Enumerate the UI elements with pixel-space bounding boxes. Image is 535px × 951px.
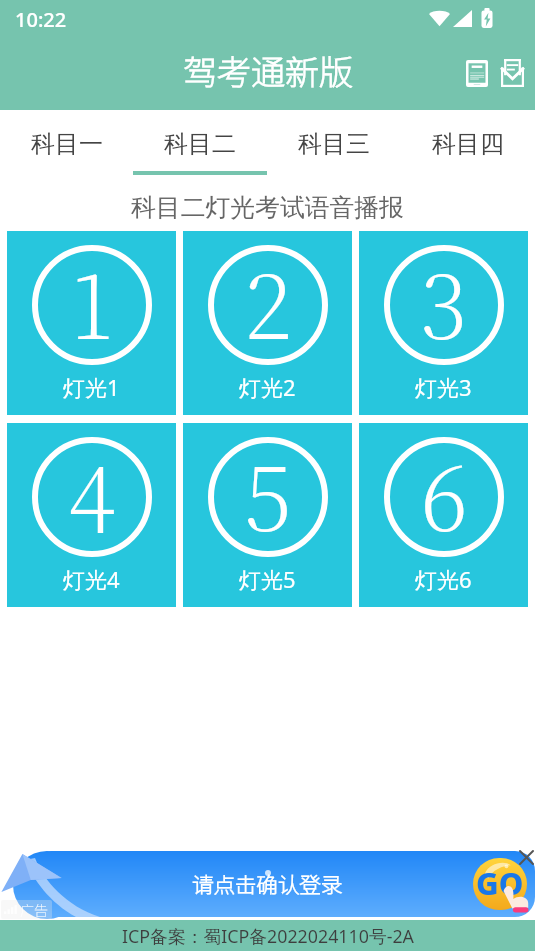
staticText: 灯光5 — [239, 564, 296, 594]
staticText: 科目一 — [31, 129, 103, 159]
button[interactable]: 科目二 — [133, 110, 267, 178]
button[interactable]: 4 — [7, 423, 176, 607]
button[interactable]: 科目四 — [401, 110, 535, 178]
button[interactable]: 5 — [183, 423, 352, 607]
staticText: 6 — [420, 430, 468, 550]
staticText: 科目三 — [298, 129, 370, 159]
staticText: 灯光1 — [63, 372, 120, 402]
staticText: GO — [476, 862, 524, 904]
button[interactable]: 科目三 — [267, 110, 401, 178]
staticText: 驾考通新版 — [183, 46, 353, 95]
button[interactable]: 科目一 — [0, 110, 133, 178]
staticText: ICP备案：蜀ICP备2022024110号-2A — [122, 924, 414, 948]
button[interactable]: 3 — [359, 231, 528, 415]
staticText: 1 — [71, 238, 113, 358]
button[interactable]: Close ad — [513, 844, 535, 870]
staticText: 广告 — [20, 900, 48, 919]
button[interactable]: Messages — [493, 50, 531, 96]
staticText: 请点击确认登录 — [192, 868, 343, 899]
staticText: 3 — [420, 238, 468, 358]
button[interactable]: 2 — [183, 231, 352, 415]
staticText: 科目二灯光考试语音播报 — [131, 192, 404, 223]
staticText: 灯光2 — [239, 372, 296, 402]
staticText: 灯光4 — [63, 564, 120, 594]
staticText: 2 — [244, 238, 292, 358]
button[interactable]: GO — [473, 858, 527, 910]
button[interactable]: Exam papers — [460, 50, 493, 96]
staticText: 科目二 — [164, 129, 236, 159]
staticText: 灯光6 — [415, 564, 472, 594]
staticText: 科目四 — [432, 129, 504, 159]
staticText: 4 — [68, 430, 116, 550]
button[interactable]: 1 — [7, 231, 176, 415]
staticText: 灯光3 — [415, 372, 472, 402]
button[interactable]: 6 — [359, 423, 528, 607]
button[interactable] — [0, 851, 535, 917]
staticText: 5 — [244, 430, 292, 550]
staticText: 10:22 — [15, 6, 67, 33]
